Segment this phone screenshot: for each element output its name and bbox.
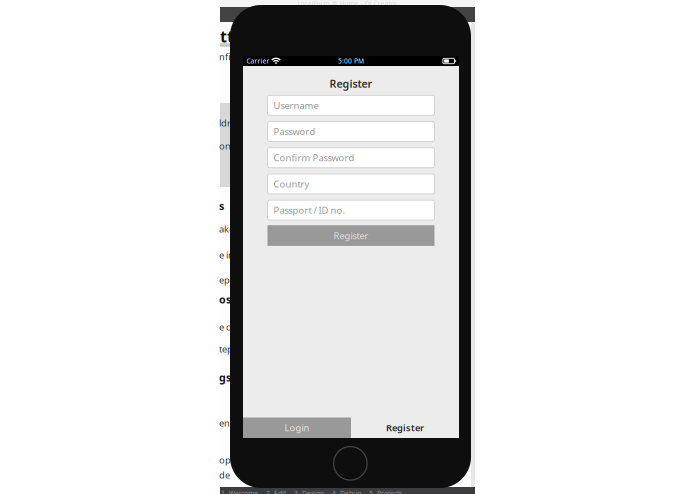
staticText: de [219, 469, 230, 481]
staticText: 1 Welcome 2 Edit 3 Design 4 Debug 5 Proj… [221, 489, 402, 494]
staticText: Register [329, 76, 372, 91]
button[interactable]: Passport / ID no. [267, 200, 434, 220]
staticText: Register [386, 422, 424, 434]
staticText: en [219, 417, 230, 429]
staticText: op [219, 454, 231, 466]
staticText: 5:00 PM [338, 57, 364, 65]
staticText: nfi [219, 50, 231, 63]
staticText: LocalForm @ Home - Qt Creator [297, 0, 397, 8]
button[interactable]: Register [267, 225, 434, 246]
staticText: on [219, 140, 231, 152]
staticText: tt [220, 26, 234, 47]
staticText: Passport / ID no. [273, 204, 345, 216]
staticText: gs [219, 370, 231, 384]
staticText: Confirm Password [273, 151, 354, 164]
staticText: ep [219, 274, 230, 286]
button[interactable]: Login [243, 417, 351, 438]
button[interactable]: Password [267, 121, 434, 141]
button[interactable]: Country [267, 174, 434, 194]
button[interactable]: Confirm Password [267, 148, 434, 168]
button[interactable]: Username [267, 95, 434, 115]
staticText: ake [219, 223, 234, 235]
staticText: Password [273, 125, 315, 138]
staticText: Username [273, 99, 318, 111]
staticText: e in [219, 249, 234, 261]
staticText: s [219, 199, 224, 213]
staticText: Register [333, 229, 368, 242]
button[interactable]: Register [351, 417, 459, 438]
staticText: tep [219, 343, 233, 355]
staticText: Login [284, 422, 309, 434]
staticText: Carrier [246, 57, 269, 65]
staticText: e c [219, 321, 230, 333]
staticText: Country [273, 178, 309, 190]
staticText: ldn [219, 117, 233, 129]
staticText: os [219, 292, 231, 306]
